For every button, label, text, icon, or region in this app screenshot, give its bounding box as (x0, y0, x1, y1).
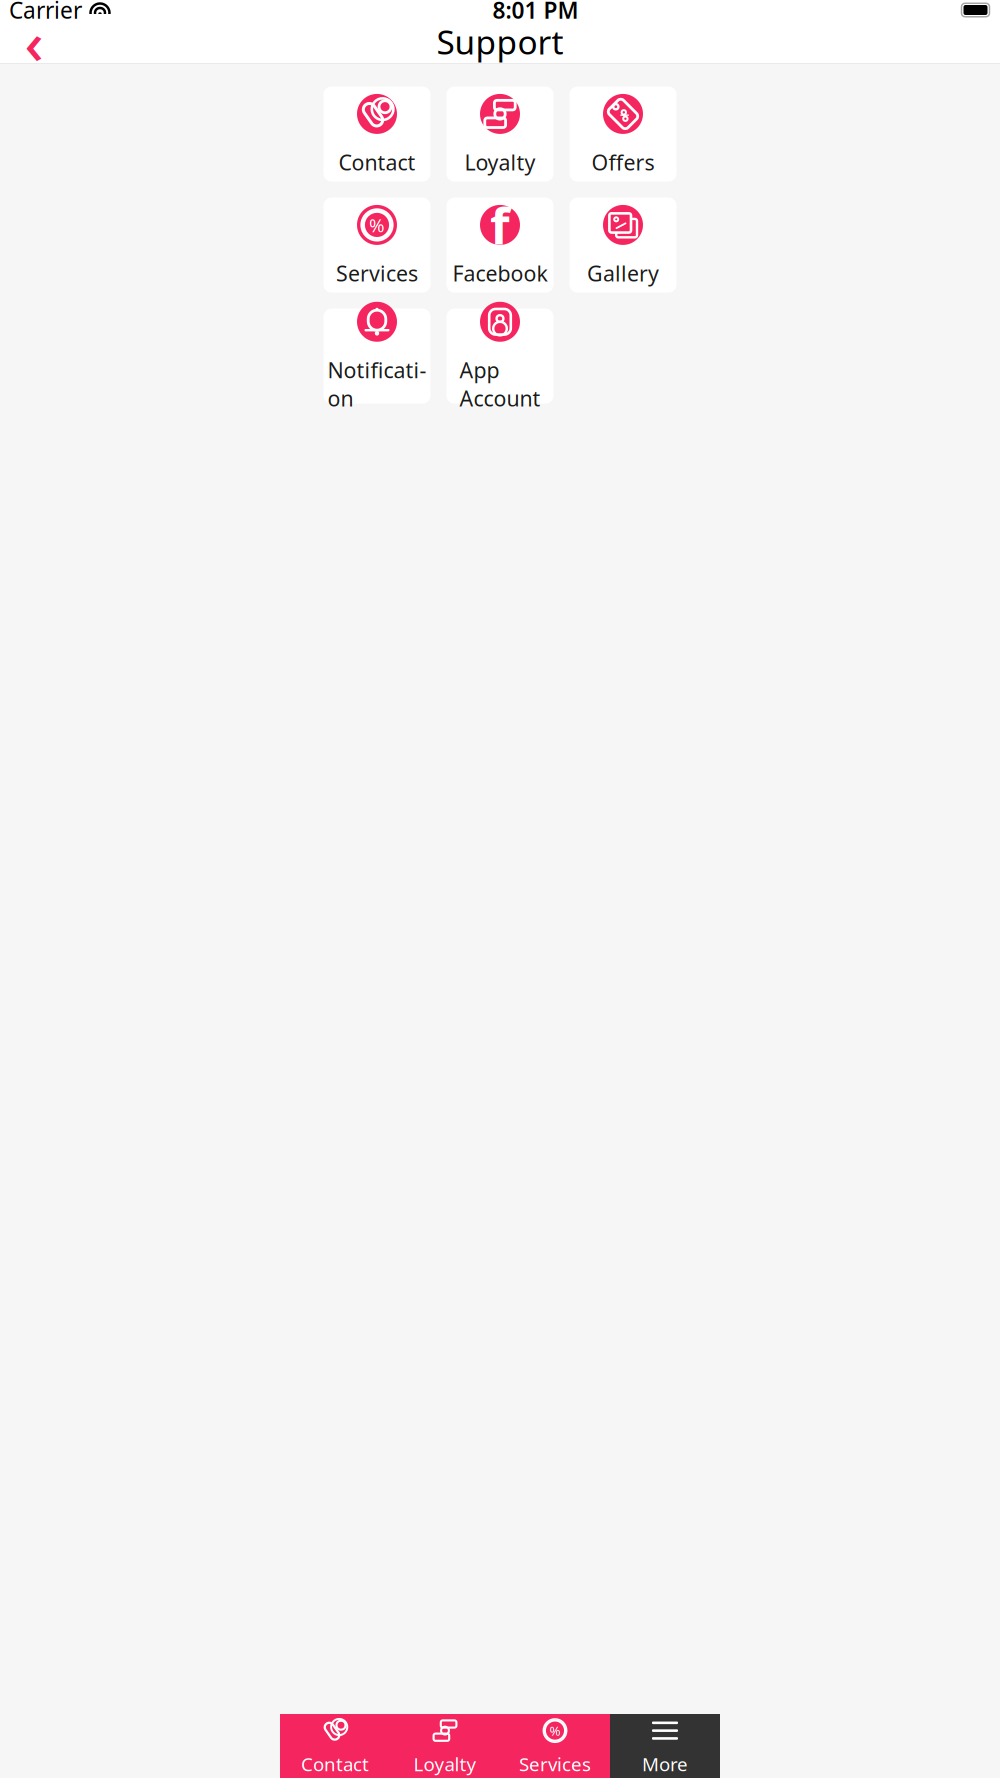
staticText: % (549, 1722, 560, 1739)
staticText: Services (336, 259, 418, 287)
staticText: ‹ (24, 2, 43, 80)
staticText: More (642, 1752, 688, 1776)
staticText: Services (519, 1752, 591, 1776)
staticText: Notification (327, 356, 426, 412)
staticText: Facebook (452, 259, 547, 287)
staticText: Loyalty (413, 1752, 476, 1776)
button[interactable]: Contact (280, 1714, 390, 1778)
staticText: Gallery (587, 259, 659, 287)
button[interactable]: Back (12, 19, 56, 63)
staticText: Support (436, 19, 563, 64)
button[interactable]: Contact (323, 87, 430, 182)
button[interactable]: Offers (569, 87, 676, 182)
staticText: Loyalty (464, 148, 535, 176)
button[interactable]: % (323, 198, 430, 293)
button[interactable]: Gallery (569, 198, 676, 293)
staticText: App Account (459, 356, 540, 412)
staticText: f (490, 191, 510, 259)
staticText: Carrier (9, 0, 82, 25)
button[interactable]: Loyalty (390, 1714, 500, 1778)
button[interactable]: More (610, 1714, 720, 1778)
staticText: 8:01 PM (492, 0, 578, 25)
button[interactable]: Loyalty (446, 87, 553, 182)
staticText: Contact (301, 1752, 369, 1776)
button[interactable]: f (446, 198, 553, 293)
staticText: Offers (591, 148, 654, 176)
button[interactable]: Notification (323, 309, 430, 404)
button[interactable]: App Account (446, 309, 553, 404)
staticText: Contact (338, 148, 415, 176)
staticText: % (369, 212, 385, 237)
button[interactable]: % (500, 1714, 610, 1778)
